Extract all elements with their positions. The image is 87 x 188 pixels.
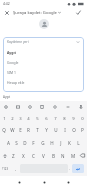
button[interactable]: Y (42, 124, 51, 136)
button[interactable]: X (18, 149, 28, 162)
staticText: Aygıt (7, 50, 16, 55)
staticText: Aygıt (3, 95, 11, 99)
staticText: 4:42 (3, 1, 10, 6)
button[interactable]: D (20, 136, 29, 149)
staticText: N (61, 153, 65, 159)
staticText: A (7, 140, 10, 146)
staticText: M (71, 153, 76, 159)
staticText: S (15, 140, 18, 146)
button[interactable]: B (48, 149, 58, 162)
button[interactable]: J (56, 136, 65, 149)
staticText: G (41, 140, 45, 146)
staticText: O (72, 127, 76, 133)
button[interactable]: Emoji (26, 103, 34, 111)
button[interactable]: 3 (16, 113, 24, 124)
button[interactable]: 2 (8, 113, 16, 124)
staticText: 0 (81, 116, 84, 122)
button[interactable]: V (38, 149, 48, 162)
staticText: I (64, 127, 66, 133)
staticText: 6 (45, 116, 48, 122)
button[interactable]: Comma (11, 162, 20, 175)
button[interactable]: M (68, 149, 78, 162)
button[interactable]: Enter (72, 164, 84, 173)
button[interactable]: 7 (51, 113, 60, 124)
staticText: F (32, 140, 35, 146)
button[interactable]: A (4, 136, 12, 149)
button[interactable]: 8 (60, 113, 69, 124)
staticText: E (19, 127, 22, 133)
staticText: X (22, 153, 25, 159)
staticText: 8 (63, 116, 66, 122)
button[interactable]: Save (72, 7, 85, 18)
button[interactable]: N (58, 149, 68, 162)
staticText: R (27, 127, 30, 133)
button[interactable]: G (38, 136, 47, 149)
staticText: C (32, 153, 35, 159)
staticText: K (68, 140, 71, 146)
staticText: SIM 1 (7, 70, 16, 75)
button[interactable]: W (8, 124, 16, 136)
button[interactable]: Symbols (0, 162, 11, 175)
button[interactable]: P (78, 124, 87, 136)
staticText: B (52, 153, 55, 159)
button[interactable]: Theme (51, 103, 59, 111)
button[interactable]: Q (0, 124, 8, 136)
button[interactable]: Kaydetme yeri (3, 37, 84, 47)
button[interactable]: H (47, 136, 56, 149)
button[interactable]: I (60, 124, 69, 136)
button[interactable]: Hesap ekle (3, 77, 84, 87)
staticText: 4 (27, 116, 30, 122)
button[interactable]: O (69, 124, 78, 136)
button[interactable]: Profile photo (39, 19, 49, 29)
button[interactable]: U (51, 124, 60, 136)
button[interactable]: T (33, 124, 42, 136)
button[interactable]: Back (13, 176, 25, 188)
staticText: Kaydetme yeri (7, 40, 29, 44)
button[interactable]: 6 (42, 113, 51, 124)
button[interactable]: L (74, 136, 83, 149)
button[interactable]: 0 (78, 113, 87, 124)
staticText: Y (45, 127, 48, 133)
button[interactable]: Aygıt (3, 47, 84, 57)
staticText: 1 (3, 116, 6, 122)
staticText: 3 (19, 116, 22, 122)
button[interactable]: Recents (62, 176, 74, 188)
staticText: V (42, 153, 45, 159)
staticText: 9 (72, 116, 75, 122)
staticText: U (54, 127, 58, 133)
staticText: Şuraya kaydet: Google (13, 10, 57, 16)
button[interactable]: Clipboard (38, 103, 46, 111)
staticText: P (81, 127, 84, 133)
staticText: , (15, 166, 17, 171)
staticText: D (23, 140, 27, 146)
button[interactable]: Shift (0, 149, 9, 162)
button[interactable]: GIF (14, 103, 22, 111)
staticText: J (60, 140, 62, 146)
button[interactable]: Voice input (77, 103, 85, 111)
button[interactable]: K (65, 136, 74, 149)
button[interactable]: S (12, 136, 20, 149)
button[interactable]: Home (38, 176, 50, 188)
button[interactable]: Settings (2, 103, 10, 111)
button[interactable]: Z (9, 149, 18, 162)
button[interactable]: C (28, 149, 38, 162)
button[interactable]: Backspace (78, 149, 87, 162)
button[interactable]: E (16, 124, 24, 136)
button[interactable]: Close (0, 7, 13, 18)
button[interactable]: 1 (0, 113, 8, 124)
button[interactable]: 4 (24, 113, 33, 124)
button[interactable]: Period (68, 162, 72, 175)
button[interactable]: SIM 1 (3, 67, 84, 77)
button[interactable]: 9 (69, 113, 78, 124)
button[interactable]: R (24, 124, 33, 136)
staticText: Hesap ekle (7, 80, 25, 85)
button[interactable]: More options (64, 103, 72, 111)
button[interactable]: Google (3, 57, 84, 67)
staticText: . (69, 166, 71, 171)
staticText: Google (7, 60, 19, 65)
button[interactable]: 5 (33, 113, 42, 124)
staticText: Q (2, 127, 6, 133)
staticText: 7 (54, 116, 57, 122)
button[interactable]: F (29, 136, 38, 149)
